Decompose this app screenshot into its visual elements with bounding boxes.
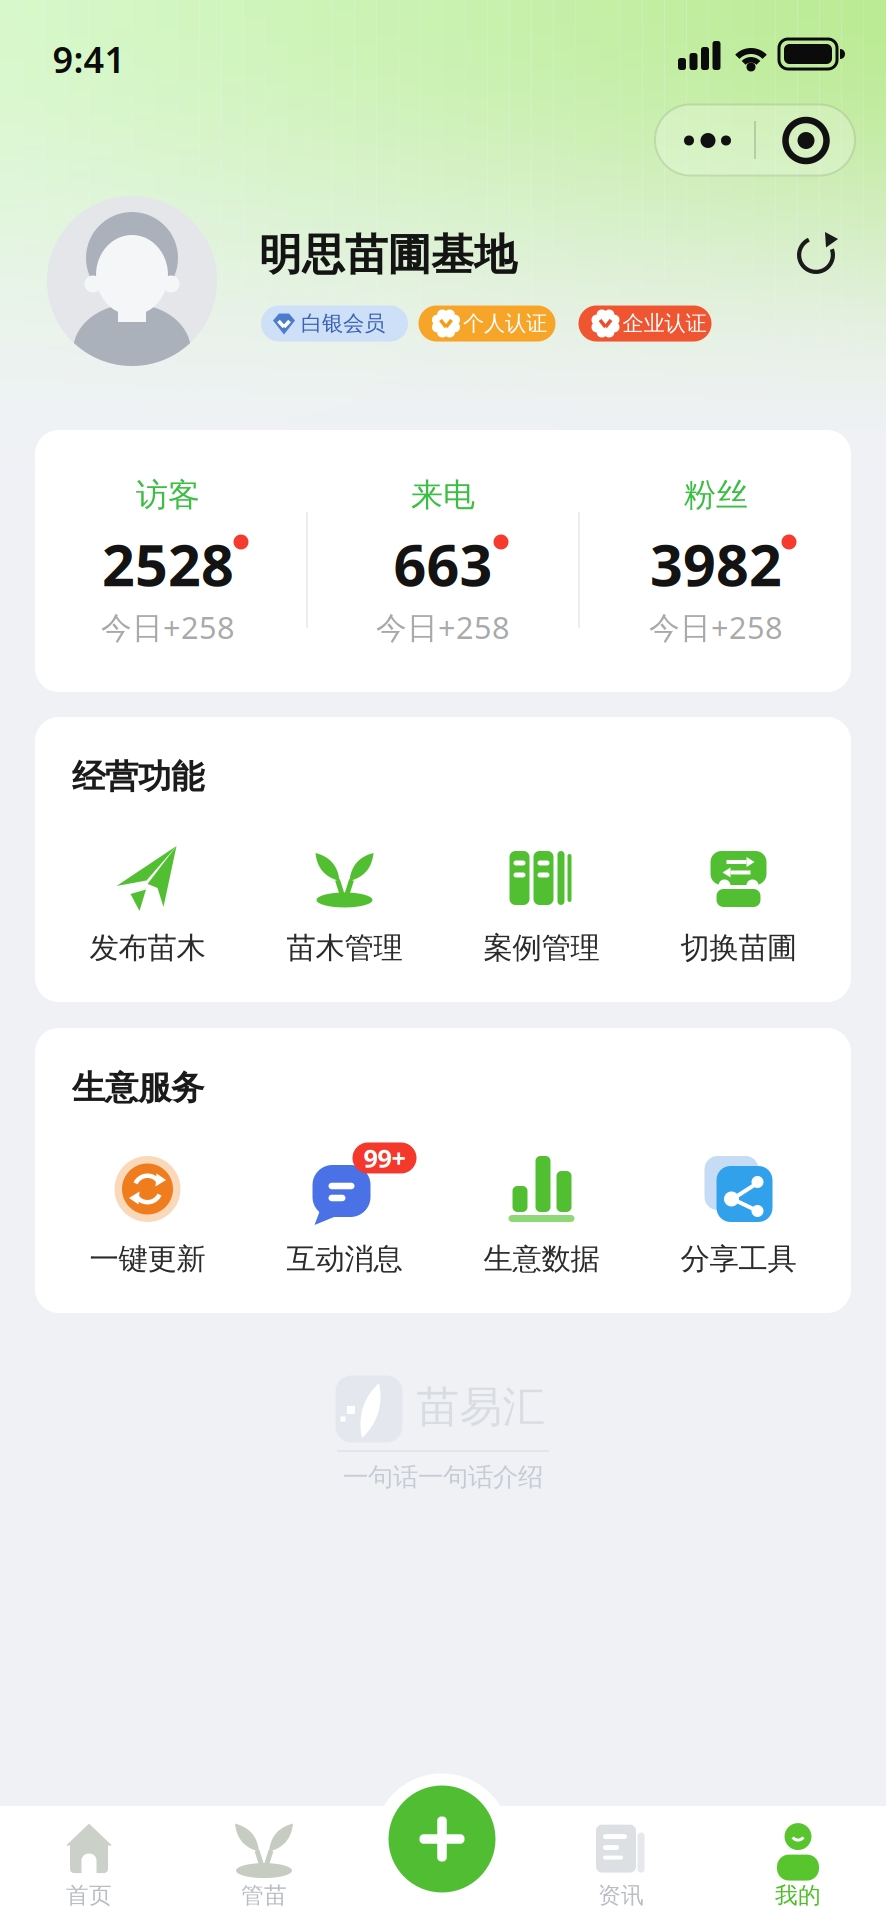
staticText: 企业认证	[622, 310, 706, 337]
button[interactable]: 一键更新	[49, 1151, 246, 1279]
staticText: 今日+258	[649, 607, 783, 647]
button[interactable]: 生意数据	[443, 1151, 640, 1279]
button[interactable]: 分享工具	[640, 1151, 837, 1279]
staticText: 互动消息	[286, 1241, 402, 1277]
staticText: 访客	[136, 475, 200, 515]
staticText: 案例管理	[483, 930, 599, 966]
staticText: 生意数据	[483, 1241, 599, 1277]
staticText: 资讯	[598, 1882, 644, 1909]
staticText: 苗易汇	[416, 1381, 545, 1433]
button[interactable]: 资讯	[546, 1813, 696, 1919]
button[interactable]: 99+	[246, 1151, 443, 1279]
button[interactable]: Add	[386, 1783, 498, 1895]
staticText: 今日+258	[376, 607, 510, 647]
staticText: 苗木管理	[286, 930, 402, 966]
staticText: 3982	[650, 526, 782, 602]
button[interactable]: Profile photo	[47, 196, 217, 366]
button[interactable]: 苗木管理	[246, 840, 443, 968]
staticText: 发布苗木	[89, 930, 205, 966]
button[interactable]: 切换苗圃	[640, 840, 837, 968]
staticText: 一键更新	[89, 1241, 205, 1277]
staticText: 2528	[102, 526, 234, 602]
button[interactable]: 白银会员	[261, 305, 408, 341]
staticText: 经营功能	[72, 756, 204, 797]
staticText: 来电	[411, 475, 475, 515]
staticText: 一句话一句话介绍	[343, 1461, 543, 1492]
button[interactable]: Refresh	[793, 231, 839, 279]
staticText: 分享工具	[680, 1241, 796, 1277]
button[interactable]: Close	[755, 104, 855, 175]
button[interactable]: 案例管理	[443, 840, 640, 968]
staticText: 管苗	[241, 1882, 287, 1909]
button[interactable]: 首页	[14, 1813, 164, 1919]
staticText: 白银会员	[301, 310, 385, 337]
staticText: 99+	[363, 1141, 405, 1175]
staticText: 我的	[775, 1882, 821, 1909]
staticText: 粉丝	[684, 475, 748, 515]
staticText: 首页	[66, 1882, 112, 1909]
staticText: 生意服务	[72, 1067, 204, 1108]
button[interactable]: 管苗	[189, 1813, 339, 1919]
button[interactable]: 我的	[723, 1813, 873, 1919]
button[interactable]: More	[656, 104, 751, 175]
staticText: 切换苗圃	[680, 930, 796, 966]
staticText: 9:41	[52, 35, 125, 83]
staticText: 个人认证	[463, 310, 547, 337]
staticText: 明思苗圃基地	[259, 229, 517, 281]
staticText: 今日+258	[101, 607, 235, 647]
button[interactable]: 个人认证	[418, 305, 555, 341]
button[interactable]: 企业认证	[578, 305, 711, 341]
button[interactable]: 发布苗木	[49, 840, 246, 968]
staticText: 663	[393, 526, 492, 602]
